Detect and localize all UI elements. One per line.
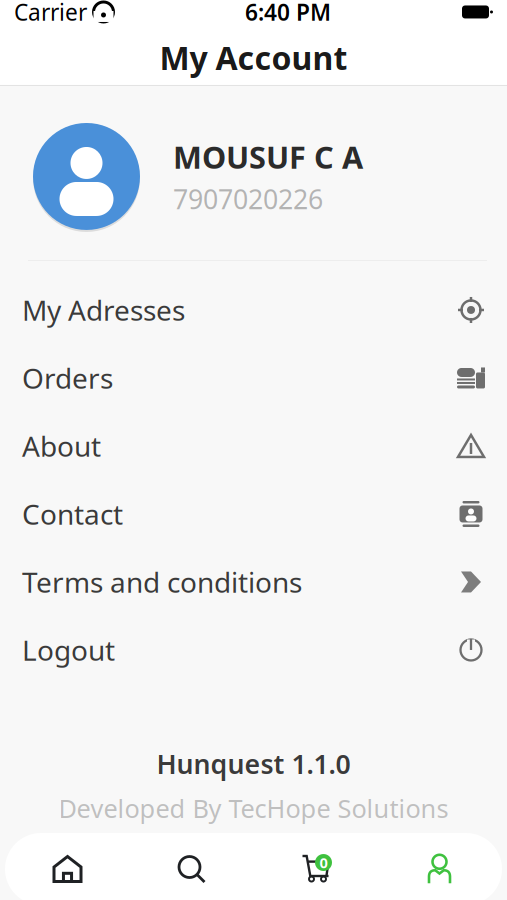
staticText: About: [22, 427, 101, 465]
button[interactable]: Cart, 0 items: [253, 833, 377, 900]
staticText: Logout: [22, 631, 115, 669]
staticText: Orders: [22, 359, 113, 397]
staticText: Hunquest 1.1.0: [156, 746, 350, 781]
button[interactable]: Home: [5, 833, 129, 900]
button[interactable]: Contact: [0, 480, 507, 548]
button[interactable]: My Account: [377, 833, 501, 900]
button[interactable]: Orders: [0, 344, 507, 412]
staticText: My Account: [159, 36, 347, 79]
staticText: MOUSUF C A: [173, 136, 363, 177]
staticText: Terms and conditions: [22, 563, 302, 601]
staticText: 6:40 PM: [245, 0, 331, 27]
button[interactable]: Logout: [0, 616, 507, 684]
button[interactable]: About: [0, 412, 507, 480]
staticText: Carrier: [14, 0, 87, 27]
button[interactable]: Terms and conditions: [0, 548, 507, 616]
staticText: Developed By TecHope Solutions: [58, 791, 448, 825]
staticText: Contact: [22, 495, 123, 533]
button[interactable]: Search: [129, 833, 253, 900]
staticText: 7907020226: [173, 181, 323, 216]
staticText: 0: [319, 853, 327, 872]
staticText: My Adresses: [22, 291, 185, 329]
button[interactable]: My Adresses: [0, 276, 507, 344]
